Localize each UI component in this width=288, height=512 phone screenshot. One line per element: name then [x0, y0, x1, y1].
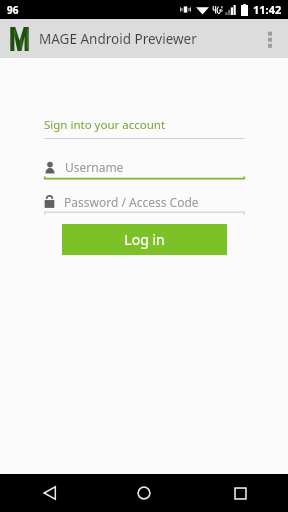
button[interactable]: Password / Access Code	[44, 189, 245, 215]
staticText: MAGE Android Previewer	[39, 30, 197, 48]
staticText: Log in	[124, 230, 165, 249]
staticText: 96	[7, 3, 19, 17]
button[interactable]: More options	[252, 21, 288, 57]
staticText: Sign into your account	[44, 117, 166, 133]
staticText: Username	[65, 159, 124, 175]
staticText: Password / Access Code	[64, 194, 199, 210]
button[interactable]: Log in	[62, 224, 227, 255]
staticText: 11:42	[253, 2, 282, 17]
button[interactable]: Home	[96, 474, 192, 512]
button[interactable]: Recent apps	[192, 474, 288, 512]
button[interactable]: Back	[0, 474, 96, 512]
button[interactable]: Username	[44, 154, 245, 180]
